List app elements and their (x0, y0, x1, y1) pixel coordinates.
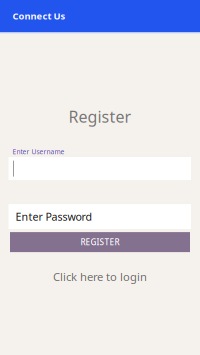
staticText: Click here to login (53, 269, 147, 284)
staticText: Enter Password (15, 209, 92, 224)
staticText: Register (68, 106, 131, 127)
staticText: Connect Us (12, 10, 65, 22)
button[interactable]: REGISTER (10, 232, 190, 252)
staticText: REGISTER (80, 236, 119, 248)
button[interactable]: Enter Username (8, 157, 191, 180)
button[interactable]: Enter Password (8, 204, 191, 229)
button[interactable]: Click here to login (0, 269, 200, 284)
staticText: Enter Username (12, 147, 64, 156)
